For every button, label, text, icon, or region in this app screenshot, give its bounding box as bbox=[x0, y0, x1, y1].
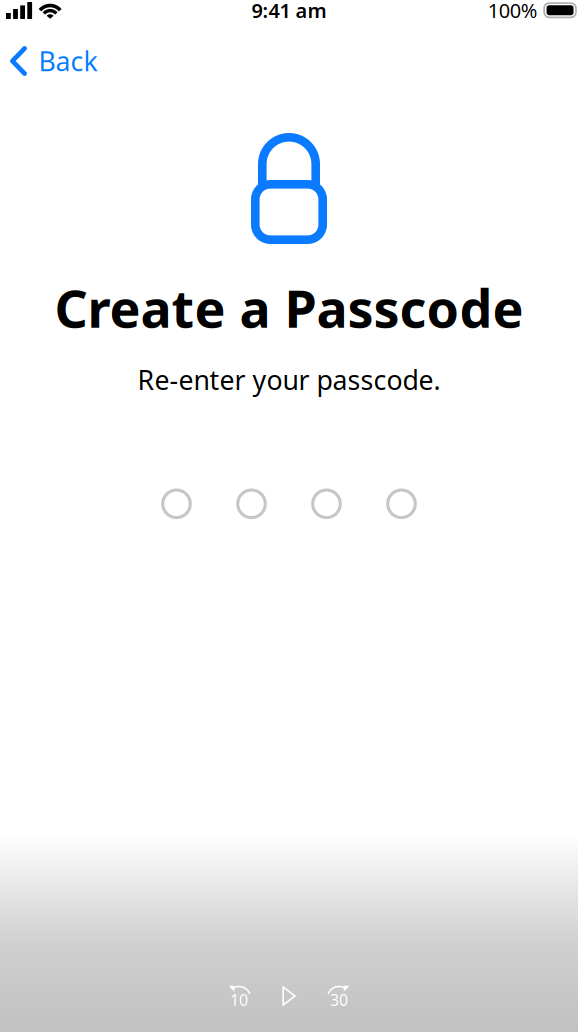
staticText: 10 bbox=[230, 989, 248, 1010]
staticText: 9:41 am bbox=[251, 0, 326, 24]
button[interactable]: Back bbox=[0, 39, 111, 83]
staticText: Re-enter your passcode. bbox=[137, 362, 440, 397]
button[interactable]: Play bbox=[264, 976, 314, 1016]
staticText: Back bbox=[38, 43, 97, 79]
staticText: 30 bbox=[330, 989, 348, 1010]
button[interactable]: Skip forward 30 seconds bbox=[314, 976, 364, 1016]
button[interactable]: Skip back 10 seconds bbox=[214, 976, 264, 1016]
staticText: 100% bbox=[488, 0, 538, 24]
staticText: Create a Passcode bbox=[54, 273, 523, 342]
